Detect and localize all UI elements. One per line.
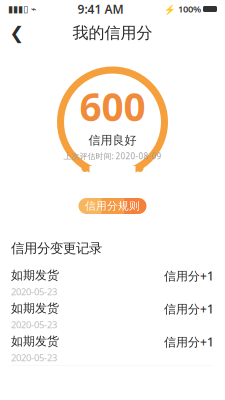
staticText: ⚡ 100% <box>164 3 201 15</box>
button[interactable]: 如期发货 <box>0 332 225 365</box>
button[interactable]: 如期发货 <box>0 299 225 332</box>
staticText: 600 <box>79 81 145 132</box>
staticText: 上次评估时间: 2020-08-09 <box>63 151 161 161</box>
button[interactable]: 信用分规则 <box>78 198 146 214</box>
staticText: 信用分+1 <box>164 334 214 350</box>
staticText: 2020-05-23 <box>11 318 57 331</box>
button[interactable]: 如期发货 <box>0 266 225 299</box>
staticText: ▮▮▮▯ <box>8 4 28 14</box>
staticText: 信用分+1 <box>164 301 214 317</box>
staticText: 2020-05-23 <box>11 351 57 364</box>
staticText: 我的信用分 <box>72 23 152 43</box>
staticText: 信用分规则 <box>85 199 140 212</box>
staticText: 如期发货 <box>11 268 59 282</box>
staticText: 9:41 AM <box>77 1 123 17</box>
staticText: 如期发货 <box>11 334 59 348</box>
staticText: 信用分+1 <box>164 268 214 284</box>
staticText: 信用良好 <box>88 133 136 148</box>
staticText: ⌁ <box>28 4 37 14</box>
staticText: 如期发货 <box>11 301 59 315</box>
button[interactable]: Back <box>0 18 34 48</box>
staticText: 2020-05-23 <box>11 285 57 298</box>
staticText: 信用分变更记录 <box>11 240 102 256</box>
staticText: ❮ <box>9 23 24 43</box>
